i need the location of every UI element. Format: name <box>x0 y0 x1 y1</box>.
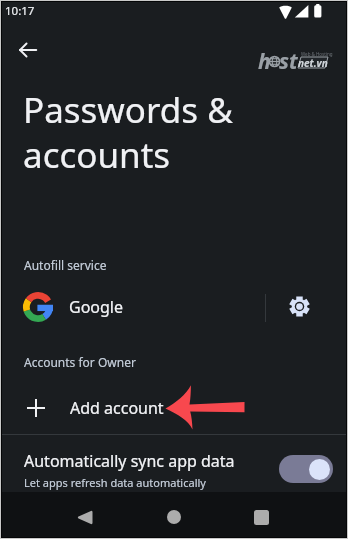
button[interactable]: Automatically sync app data toggle <box>279 455 333 483</box>
button[interactable]: Google <box>2 283 346 331</box>
button[interactable]: Home <box>153 496 195 538</box>
staticText: Add account <box>70 397 164 419</box>
button[interactable]: Back <box>64 496 106 538</box>
staticText: Autofill service <box>24 257 107 273</box>
button[interactable]: Autofill settings <box>275 282 323 330</box>
button[interactable]: Recent apps <box>240 496 282 538</box>
button[interactable]: Back <box>8 30 48 70</box>
staticText: Automatically sync app data <box>24 450 235 472</box>
staticText: Passwords & accounts <box>23 86 233 179</box>
staticText: 10:17 <box>5 3 35 19</box>
staticText: net.vn <box>298 56 328 70</box>
staticText: Accounts for Owner <box>24 354 136 370</box>
staticText: st <box>279 47 298 71</box>
staticText: Web & Hosting <box>301 51 333 57</box>
staticText: Google <box>69 296 124 318</box>
button[interactable]: Add account <box>2 385 346 431</box>
staticText: h <box>258 47 271 71</box>
staticText: Let apps refresh data automatically <box>24 475 206 490</box>
